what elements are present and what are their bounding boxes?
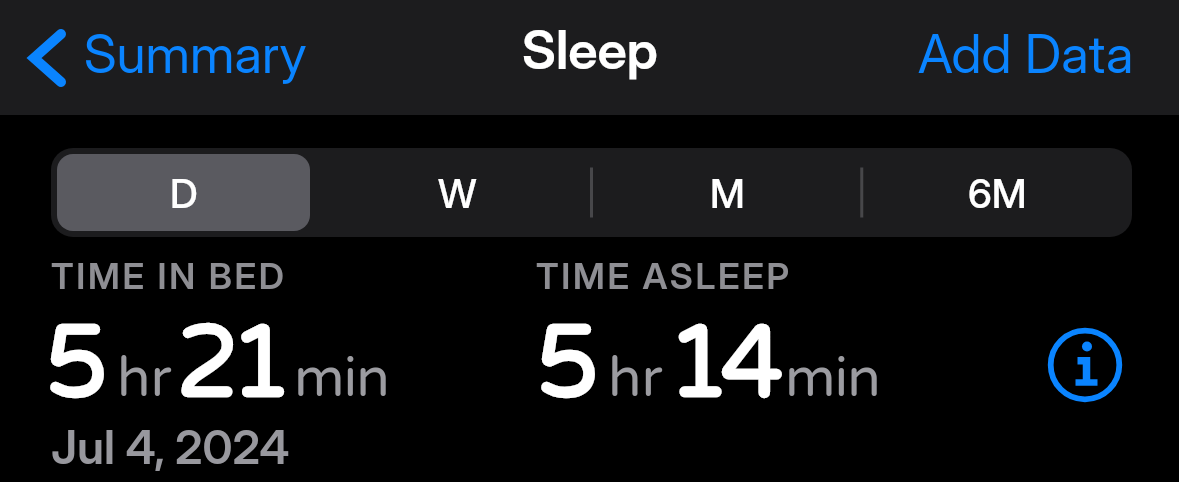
staticText: 21 bbox=[176, 303, 283, 425]
staticText: M bbox=[710, 169, 745, 217]
staticText: 21 bbox=[176, 303, 283, 425]
staticText: 5 bbox=[45, 303, 109, 425]
staticText: 5 bbox=[45, 303, 109, 425]
staticText: 5 bbox=[536, 303, 600, 425]
staticText: hr bbox=[117, 346, 172, 412]
staticText: min bbox=[294, 346, 389, 412]
staticText: hr bbox=[608, 346, 663, 412]
staticText: 14 bbox=[667, 303, 774, 425]
button[interactable] bbox=[1044, 324, 1126, 406]
button[interactable]: M bbox=[592, 148, 862, 237]
staticText: Add Data bbox=[918, 22, 1134, 86]
staticText: hr bbox=[608, 346, 663, 412]
button[interactable]: Add Data bbox=[918, 22, 1134, 86]
staticText: min bbox=[785, 346, 880, 412]
staticText: min bbox=[294, 346, 389, 412]
staticText: TIME ASLEEP bbox=[536, 254, 792, 298]
staticText: TIME IN BED bbox=[51, 254, 287, 298]
staticText: Jul 4, 2024 bbox=[51, 418, 290, 475]
button[interactable]: Summary bbox=[29, 26, 307, 90]
staticText: Summary bbox=[84, 22, 307, 86]
button[interactable]: W bbox=[322, 148, 592, 237]
staticText: 6M bbox=[968, 169, 1027, 217]
button[interactable]: 6M bbox=[862, 148, 1132, 237]
staticText: D bbox=[170, 169, 198, 217]
staticText: 5 bbox=[536, 303, 600, 425]
staticText: W bbox=[438, 169, 477, 217]
button[interactable]: D bbox=[57, 154, 310, 231]
staticText: Sleep bbox=[522, 18, 658, 82]
staticText: hr bbox=[117, 346, 172, 412]
staticText: min bbox=[785, 346, 880, 412]
staticText: 14 bbox=[667, 303, 774, 425]
